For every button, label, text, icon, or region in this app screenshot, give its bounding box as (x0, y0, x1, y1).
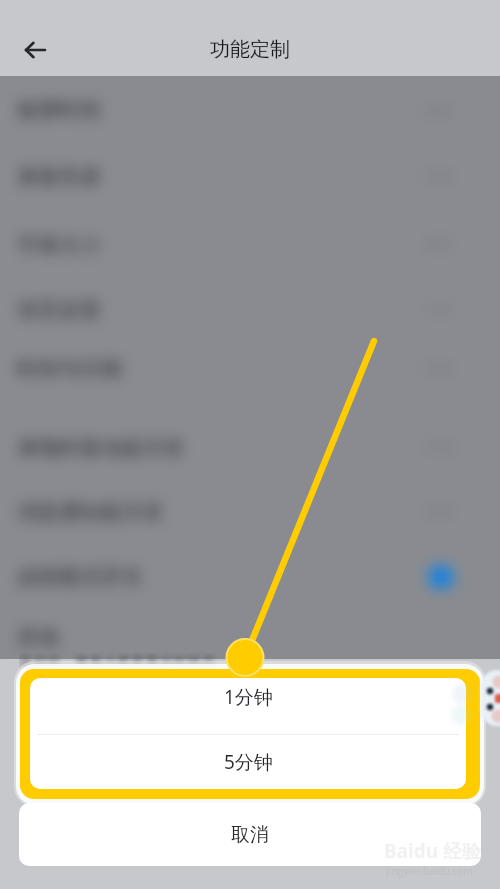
staticText: 功能定制 (210, 37, 290, 62)
staticText: 消息通知提示音 (17, 499, 164, 525)
staticText: 字体大小 (17, 232, 101, 258)
staticText: 开启后，将有小星星显示在状态栏 (19, 653, 219, 671)
staticText: 取消 (231, 823, 269, 847)
button[interactable]: 取消 (19, 803, 481, 866)
staticText: 勿扰模式开关 (17, 564, 143, 590)
button[interactable]: 5分钟 (30, 735, 466, 789)
button[interactable]: Back (14, 30, 56, 70)
staticText: 1分钟 (224, 684, 273, 710)
staticText: 锁屏时间 (17, 97, 101, 123)
staticText: jingyan.baidu.com (386, 864, 473, 878)
button[interactable]: 1分钟 (30, 678, 466, 734)
staticText: 屏幕亮度 (17, 164, 101, 190)
staticText: 5分钟 (224, 749, 273, 775)
staticText: 来电时振动提示音 (17, 435, 185, 461)
staticText: 时间与日期 (17, 356, 122, 382)
staticText: 其他 (17, 624, 59, 650)
staticText: 语言设置 (17, 297, 101, 323)
staticText: Baidu 经验 (384, 838, 481, 864)
